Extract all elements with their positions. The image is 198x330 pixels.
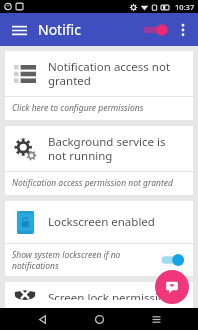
- button[interactable]: Screen lock permission not granted: [5, 282, 193, 308]
- button[interactable]: Lockscreen enabled: [5, 201, 193, 276]
- staticText: Notification access permission not grant…: [12, 177, 173, 189]
- staticText: Click here to configure permissions: [12, 102, 144, 114]
- staticText: Background service is not running: [48, 134, 185, 163]
- button[interactable]: Open navigation menu: [6, 17, 32, 43]
- button[interactable]: Master toggle: [141, 19, 171, 41]
- button[interactable]: More options: [171, 18, 195, 42]
- button[interactable]: Open notifications: [155, 270, 189, 304]
- staticText: Show system lockscreen if no notificatio…: [12, 249, 156, 271]
- staticText: Screen lock permission not granted: [48, 290, 185, 300]
- staticText: 10:37: [175, 2, 195, 12]
- staticText: Lockscreen enabled: [48, 214, 155, 230]
- staticText: Notific: [38, 20, 81, 39]
- button[interactable]: Show system lockscreen toggle: [160, 252, 186, 268]
- button[interactable]: Home: [84, 308, 114, 330]
- button[interactable]: Back: [27, 308, 57, 330]
- button[interactable]: Notification access not granted: [5, 51, 193, 120]
- button[interactable]: Show system lockscreen if no notificatio…: [5, 244, 193, 276]
- staticText: Notification access not granted: [48, 59, 185, 88]
- button[interactable]: Recent apps: [141, 308, 171, 330]
- button[interactable]: Background service is not running: [5, 126, 193, 195]
